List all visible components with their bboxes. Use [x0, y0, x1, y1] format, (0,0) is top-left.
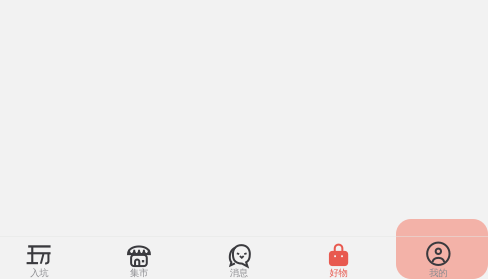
button[interactable]: 集市 — [89, 235, 189, 279]
staticText: 我的 — [429, 267, 447, 279]
button[interactable]: 入坑 — [0, 235, 89, 279]
button[interactable]: 我的 — [388, 235, 488, 279]
button[interactable]: 消息 — [189, 235, 289, 279]
staticText: 集市 — [130, 267, 148, 279]
staticText: 入坑 — [30, 267, 48, 279]
staticText: 消息 — [230, 267, 248, 279]
button[interactable]: 好物 — [289, 235, 388, 279]
staticText: 好物 — [329, 267, 347, 279]
